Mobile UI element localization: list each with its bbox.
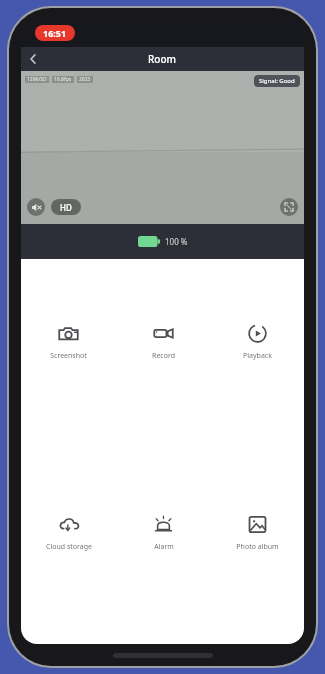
- button[interactable]: Playback: [237, 319, 278, 365]
- staticText: Alarm: [154, 542, 174, 552]
- button[interactable]: Back: [21, 47, 45, 71]
- button[interactable]: Mute: [27, 198, 45, 216]
- button[interactable]: Fullscreen: [280, 198, 298, 216]
- staticText: Photo album: [236, 542, 279, 552]
- staticText: Room: [148, 52, 177, 66]
- button[interactable]: Cloud storage: [40, 510, 98, 556]
- staticText: Cloud storage: [46, 542, 92, 552]
- button[interactable]: Signal: Good: [254, 75, 300, 87]
- button[interactable]: Alarm: [147, 510, 180, 556]
- staticText: Playback: [243, 351, 272, 361]
- button[interactable]: Photo album: [230, 510, 285, 556]
- staticText: Signal: Good: [259, 77, 295, 85]
- staticText: 1296/SD: [27, 76, 47, 83]
- staticText: Record: [152, 351, 175, 361]
- button[interactable]: HD: [51, 199, 81, 215]
- staticText: 100 %: [165, 236, 188, 247]
- staticText: 2023: [79, 76, 91, 83]
- staticText: HD: [60, 202, 72, 213]
- staticText: Screenshot: [50, 351, 87, 361]
- staticText: 16:51: [43, 27, 67, 39]
- button[interactable]: Record: [146, 319, 181, 365]
- staticText: 16.8fps: [54, 76, 72, 83]
- button[interactable]: Screenshot: [44, 319, 93, 365]
